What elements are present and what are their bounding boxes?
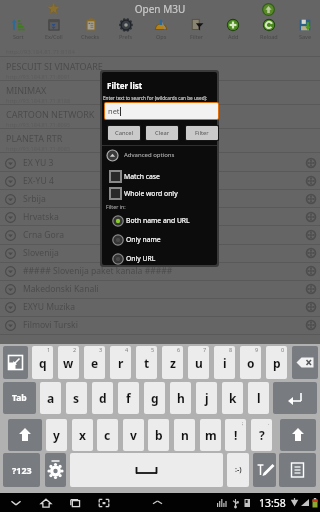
button[interactable]: t xyxy=(136,346,157,379)
button[interactable]: Both name and URL xyxy=(112,214,190,227)
button[interactable]: Keyboard settings xyxy=(45,453,66,487)
button[interactable]: Home xyxy=(36,493,55,512)
button[interactable]: f xyxy=(118,382,139,414)
button[interactable]: Slovenija xyxy=(0,244,320,262)
button[interactable]: EXYU Muzika xyxy=(0,298,320,316)
staticText: Advanced options xyxy=(124,151,175,159)
button[interactable]: Clear xyxy=(146,126,178,140)
button[interactable]: i xyxy=(214,346,235,379)
staticText: c xyxy=(104,427,111,443)
button[interactable]: Screenshot xyxy=(94,493,113,512)
button[interactable]: Only URL xyxy=(112,252,156,265)
button[interactable]: Tab xyxy=(3,382,36,414)
staticText: Makedonski Kanali xyxy=(23,283,99,295)
button[interactable]: ##### Slovenija paket kanala ##### xyxy=(0,262,320,280)
button[interactable]: r xyxy=(110,346,131,379)
button[interactable]: Save xyxy=(288,18,320,46)
staticText: Filter xyxy=(190,33,204,40)
button[interactable]: Enter xyxy=(273,382,317,414)
button[interactable]: CARTOON NETWORK xyxy=(0,105,320,129)
button[interactable]: ! xyxy=(225,419,246,451)
staticText: z xyxy=(170,355,176,371)
button[interactable]: EX-YU 4 xyxy=(0,172,320,190)
staticText: Filmovi Turski xyxy=(23,319,78,331)
button[interactable]: Shift xyxy=(280,419,316,451)
button[interactable]: ? xyxy=(251,419,272,451)
staticText: 5 xyxy=(151,346,155,353)
button[interactable]: g xyxy=(144,382,165,414)
staticText: CARTOON NETWORK xyxy=(6,108,95,120)
button[interactable]: Checks xyxy=(73,18,107,46)
button[interactable]: Expand xyxy=(148,493,167,512)
button[interactable]: j xyxy=(196,382,217,414)
button[interactable]: MINIMAX xyxy=(0,81,320,105)
button[interactable]: Hrvatska xyxy=(0,208,320,226)
button[interactable]: EX YU 3 xyxy=(0,154,320,172)
button[interactable]: Back xyxy=(6,493,25,512)
button[interactable]: h xyxy=(170,382,191,414)
button[interactable]: l xyxy=(248,382,269,414)
button[interactable]: m xyxy=(200,419,221,451)
staticText: s xyxy=(73,390,80,406)
staticText: Hrvatska xyxy=(23,211,59,223)
button[interactable]: PESCUIT SI VINATOARE xyxy=(0,57,320,81)
button[interactable]: net xyxy=(105,103,218,119)
staticText: http://93.184.81.71:8095 xyxy=(6,121,71,129)
button[interactable]: c xyxy=(97,419,118,451)
button[interactable]: a xyxy=(40,382,61,414)
button[interactable]: Advanced options xyxy=(106,147,175,163)
button[interactable]: p xyxy=(266,346,287,379)
staticText: Prefs xyxy=(119,33,133,40)
button[interactable]: o xyxy=(240,346,261,379)
staticText: 1 xyxy=(47,346,51,353)
button[interactable]: Sort xyxy=(1,18,35,46)
button[interactable]: Cancel xyxy=(108,126,140,140)
button[interactable]: PLANETA RTR xyxy=(0,129,320,153)
button[interactable]: ?123 xyxy=(3,453,40,487)
button[interactable]: Filter xyxy=(186,126,218,140)
button[interactable]: Srbija xyxy=(0,190,320,208)
button[interactable]: y xyxy=(46,419,67,451)
staticText: ; xyxy=(242,419,244,426)
button[interactable]: Filmovi Turski xyxy=(0,316,320,334)
button[interactable]: Ops xyxy=(144,18,178,46)
button[interactable]: Ex/Coll xyxy=(37,18,71,46)
staticText: Checks xyxy=(81,33,100,40)
button[interactable]: Reload xyxy=(252,18,286,46)
button[interactable]: e xyxy=(84,346,105,379)
staticText: 4 xyxy=(125,346,129,353)
button[interactable]: Recents xyxy=(65,493,84,512)
button[interactable]: :-) xyxy=(227,453,249,487)
button[interactable]: Only name xyxy=(112,233,161,246)
button[interactable]: Match case xyxy=(109,169,160,184)
staticText: l xyxy=(257,390,261,406)
button[interactable]: k xyxy=(222,382,243,414)
button[interactable]: q xyxy=(32,346,53,379)
button[interactable]: Space xyxy=(70,453,223,487)
button[interactable]: d xyxy=(92,382,113,414)
button[interactable]: v xyxy=(123,419,144,451)
button[interactable]: b xyxy=(148,419,169,451)
button[interactable]: x xyxy=(72,419,93,451)
staticText: w xyxy=(63,355,74,371)
button[interactable]: Resize keyboard xyxy=(3,346,28,379)
button[interactable]: Add xyxy=(216,18,250,46)
staticText: Ex/Coll xyxy=(45,33,63,40)
button[interactable]: z xyxy=(162,346,183,379)
button[interactable]: Backspace xyxy=(292,346,318,379)
staticText: 9 xyxy=(255,346,259,353)
button[interactable]: Shift xyxy=(8,419,42,451)
button[interactable]: n xyxy=(174,419,195,451)
button[interactable]: Whole word only xyxy=(109,186,178,201)
button[interactable]: Makedonski Kanali xyxy=(0,280,320,298)
button[interactable]: Prefs xyxy=(109,18,143,46)
button[interactable]: w xyxy=(58,346,79,379)
button[interactable]: Clipboard xyxy=(279,453,316,487)
button[interactable]: u xyxy=(188,346,209,379)
button[interactable]: Handwriting xyxy=(253,453,276,487)
button[interactable]: Filter xyxy=(180,18,214,46)
staticText: r xyxy=(118,355,124,371)
button[interactable]: Crna Gora xyxy=(0,226,320,244)
button[interactable]: s xyxy=(66,382,87,414)
